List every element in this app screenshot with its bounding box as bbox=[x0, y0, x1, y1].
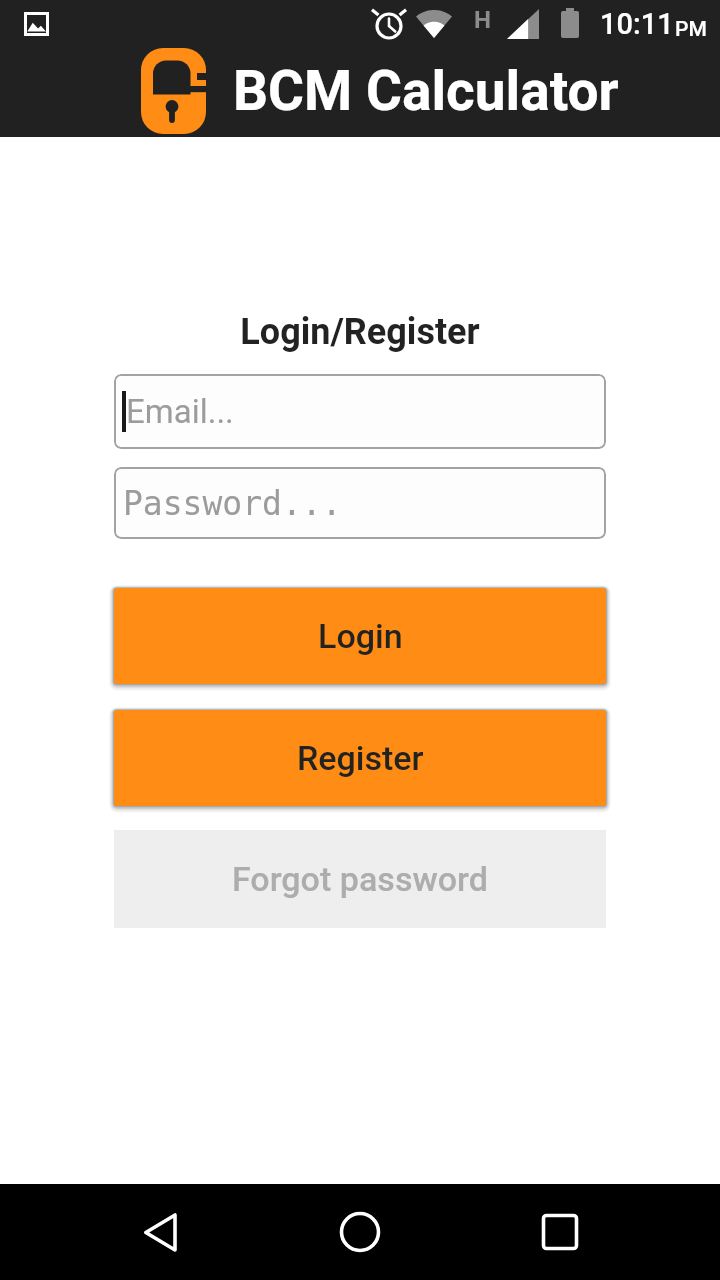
staticText: BCM Calculator bbox=[233, 59, 619, 123]
button[interactable]: Email... bbox=[114, 374, 606, 449]
button[interactable]: Register bbox=[114, 710, 606, 806]
button[interactable]: Forgot password bbox=[114, 830, 606, 928]
staticText: Register bbox=[297, 738, 424, 778]
staticText: H bbox=[474, 6, 491, 34]
button[interactable]: BCM Calculator bbox=[141, 48, 619, 134]
staticText: Forgot password bbox=[232, 859, 488, 899]
button[interactable]: Password... bbox=[114, 467, 606, 539]
button[interactable]: Recent apps bbox=[500, 1184, 620, 1280]
button[interactable]: Login bbox=[114, 588, 606, 684]
staticText: 10:11 bbox=[600, 7, 674, 41]
staticText: Email... bbox=[126, 392, 234, 431]
staticText: Login/Register bbox=[0, 311, 720, 353]
staticText: Login bbox=[318, 616, 403, 656]
staticText: PM bbox=[675, 17, 707, 42]
button[interactable]: Home bbox=[300, 1184, 420, 1280]
button[interactable]: Back bbox=[100, 1184, 220, 1280]
staticText: Password... bbox=[123, 484, 342, 522]
